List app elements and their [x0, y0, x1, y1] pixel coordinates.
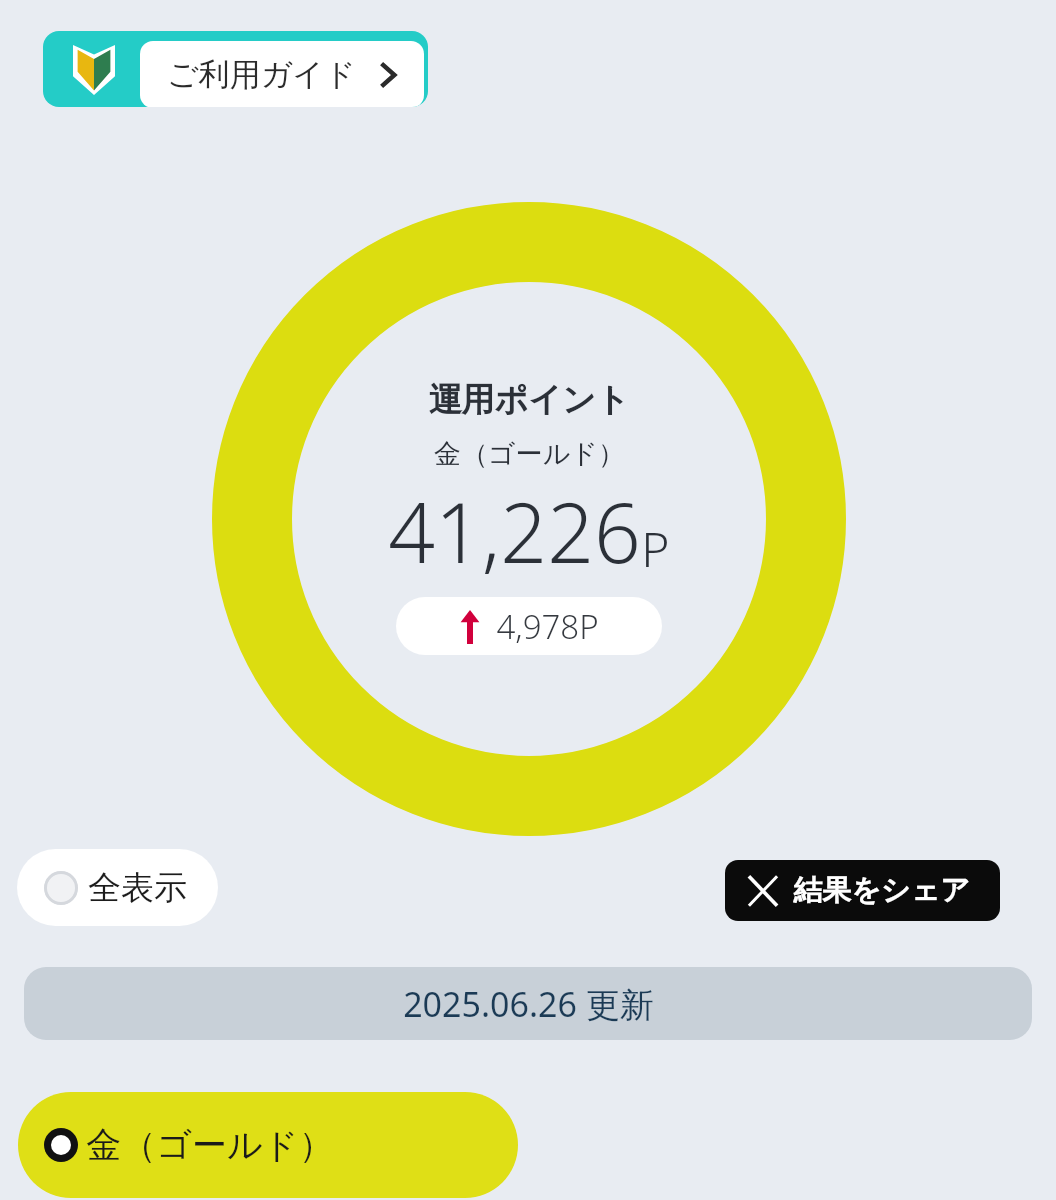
button[interactable]: ご利用ガイド — [140, 41, 424, 107]
staticText: P — [641, 516, 670, 581]
staticText: 金（ゴールド） — [86, 1123, 334, 1167]
staticText: 結果をシェア — [793, 872, 970, 909]
button[interactable]: 結果をシェア — [725, 860, 1000, 921]
staticText: 全表示 — [88, 867, 187, 909]
button[interactable]: ご利用ガイド — [43, 31, 428, 107]
staticText: 運用ポイント — [428, 379, 630, 421]
button[interactable]: 金（ゴールド） — [18, 1092, 518, 1198]
staticText: 41,226 — [388, 475, 641, 587]
staticText: 金（ゴールド） — [434, 437, 625, 471]
staticText: 4,978P — [496, 604, 599, 649]
button[interactable]: 2025.06.26 更新 — [24, 967, 1032, 1040]
staticText: 2025.06.26 更新 — [403, 981, 654, 1027]
staticText: ご利用ガイド — [167, 55, 356, 94]
button[interactable]: 全表示 — [17, 849, 218, 926]
